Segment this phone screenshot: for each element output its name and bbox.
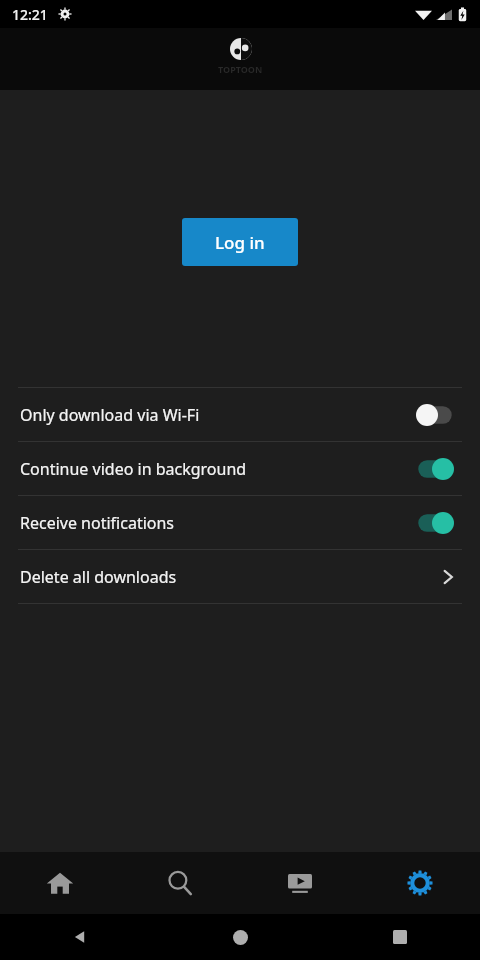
button[interactable]: Videos: [240, 852, 360, 914]
button[interactable]: Recent apps: [320, 914, 480, 960]
button[interactable]: Delete all downloads: [0, 550, 480, 603]
staticText: Delete all downloads: [20, 566, 177, 588]
button[interactable]: Receive notifications: [0, 496, 480, 549]
button[interactable]: Home: [0, 852, 120, 914]
staticText: TOPTOON: [218, 63, 263, 75]
staticText: 12:21: [12, 5, 48, 24]
staticText: Continue video in background: [20, 458, 247, 480]
button[interactable]: Settings: [360, 852, 480, 914]
button[interactable]: Continue video in background: [0, 442, 480, 495]
button[interactable]: Only download via Wi-Fi: [0, 388, 480, 441]
button[interactable]: Back: [0, 914, 160, 960]
staticText: Only download via Wi-Fi: [20, 404, 200, 426]
button[interactable]: Search: [120, 852, 240, 914]
staticText: Receive notifications: [20, 512, 175, 534]
button[interactable]: App logo: [0, 28, 480, 90]
button[interactable]: Home: [160, 914, 320, 960]
staticText: Log in: [215, 231, 265, 254]
button[interactable]: Log in: [182, 218, 298, 266]
